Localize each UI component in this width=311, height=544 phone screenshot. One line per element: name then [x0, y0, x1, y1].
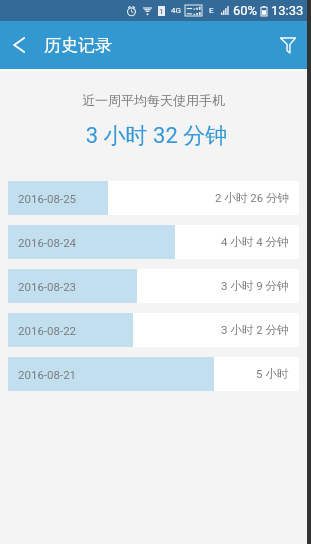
staticText: 3 小时 2 分钟: [221, 323, 289, 337]
staticText: 2016-08-22: [18, 324, 77, 337]
staticText: 2016-08-21: [18, 368, 77, 381]
staticText: 60%: [233, 3, 258, 18]
staticText: 3 小时 32 分钟: [6, 122, 307, 150]
button[interactable]: 2016-08-22: [8, 313, 299, 347]
staticText: 13:33: [271, 3, 304, 18]
button[interactable]: Back: [1, 21, 39, 69]
staticText: 历史记录: [44, 35, 112, 56]
staticText: 2 小时 26 分钟: [215, 191, 289, 205]
staticText: 1: [159, 7, 164, 16]
staticText: 4 小时 4 分钟: [221, 235, 289, 249]
staticText: 2016-08-23: [18, 280, 77, 293]
button[interactable]: 2016-08-24: [8, 225, 299, 259]
staticText: 2016-08-25: [18, 192, 77, 205]
staticText: 2016-08-24: [18, 236, 77, 249]
button[interactable]: 2016-08-23: [8, 269, 299, 303]
button[interactable]: 2016-08-21: [8, 357, 299, 391]
staticText: 近一周平均每天使用手机: [0, 92, 307, 108]
staticText: E: [209, 6, 214, 15]
staticText: 5 小时: [256, 367, 289, 381]
staticText: 3 小时 9 分钟: [221, 279, 289, 293]
button[interactable]: Filter: [269, 21, 307, 69]
staticText: 4G: [171, 6, 181, 15]
button[interactable]: 2016-08-25: [8, 181, 299, 215]
